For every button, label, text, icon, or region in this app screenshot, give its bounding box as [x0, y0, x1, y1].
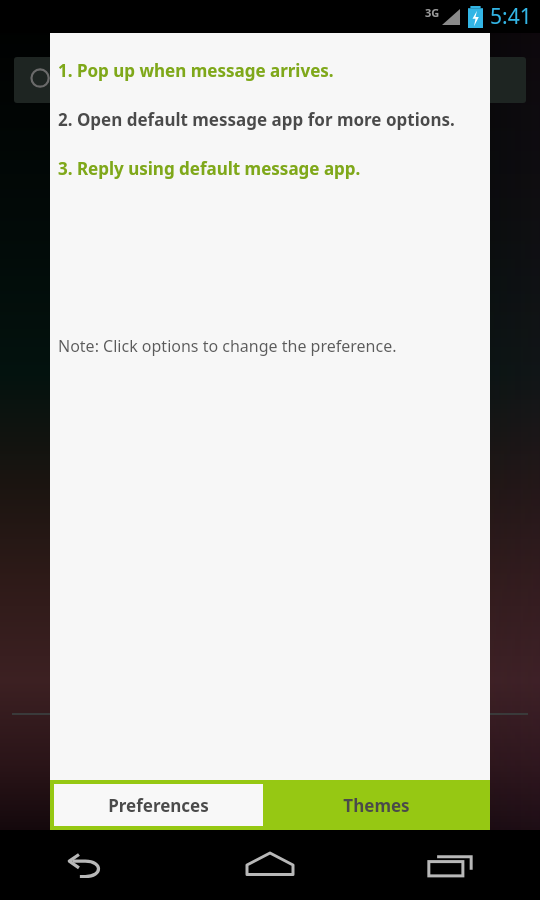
staticText: 5:41 [490, 2, 532, 31]
staticText: Themes [343, 794, 410, 817]
staticText: 2. Open default message app for more opt… [58, 108, 455, 131]
staticText: Note: Click options to change the prefer… [58, 335, 397, 357]
button[interactable]: Back [0, 830, 180, 900]
button[interactable]: Home [180, 830, 360, 900]
staticText: 3G [425, 5, 440, 20]
staticText: Preferences [108, 794, 209, 817]
button[interactable]: Preferences [54, 784, 263, 826]
button[interactable]: Recent apps [360, 830, 540, 900]
button[interactable]: Themes [263, 780, 490, 830]
staticText: 1. Pop up when message arrives. [58, 59, 334, 82]
staticText: 3. Reply using default message app. [58, 157, 361, 180]
